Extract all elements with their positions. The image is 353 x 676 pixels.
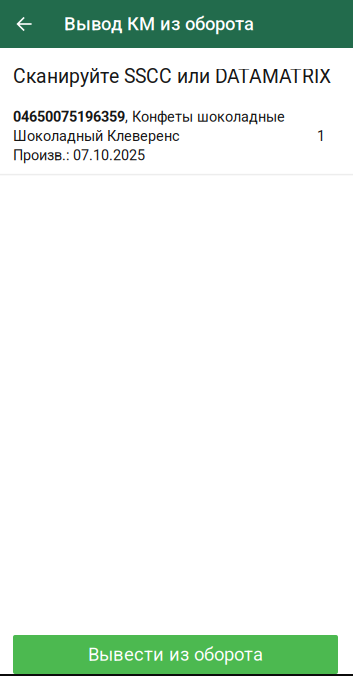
staticText: Вывести из оборота: [88, 644, 263, 665]
staticText: Вывод КМ из оборота: [64, 13, 254, 35]
staticText: Шоколадный Клеверенс: [13, 128, 180, 144]
staticText: Сканируйте SSCC или DATAMATRIX: [13, 65, 331, 88]
staticText: 1: [317, 128, 325, 145]
button[interactable]: Вывести из оборота: [13, 635, 338, 674]
staticText: Произв.: 07.10.2025: [13, 147, 145, 164]
button[interactable]: 04650075196359, Конфеты шоколадные: [0, 109, 353, 175]
staticText: 04650075196359, Конфеты шоколадные: [13, 109, 285, 125]
button[interactable]: Back: [0, 0, 48, 48]
